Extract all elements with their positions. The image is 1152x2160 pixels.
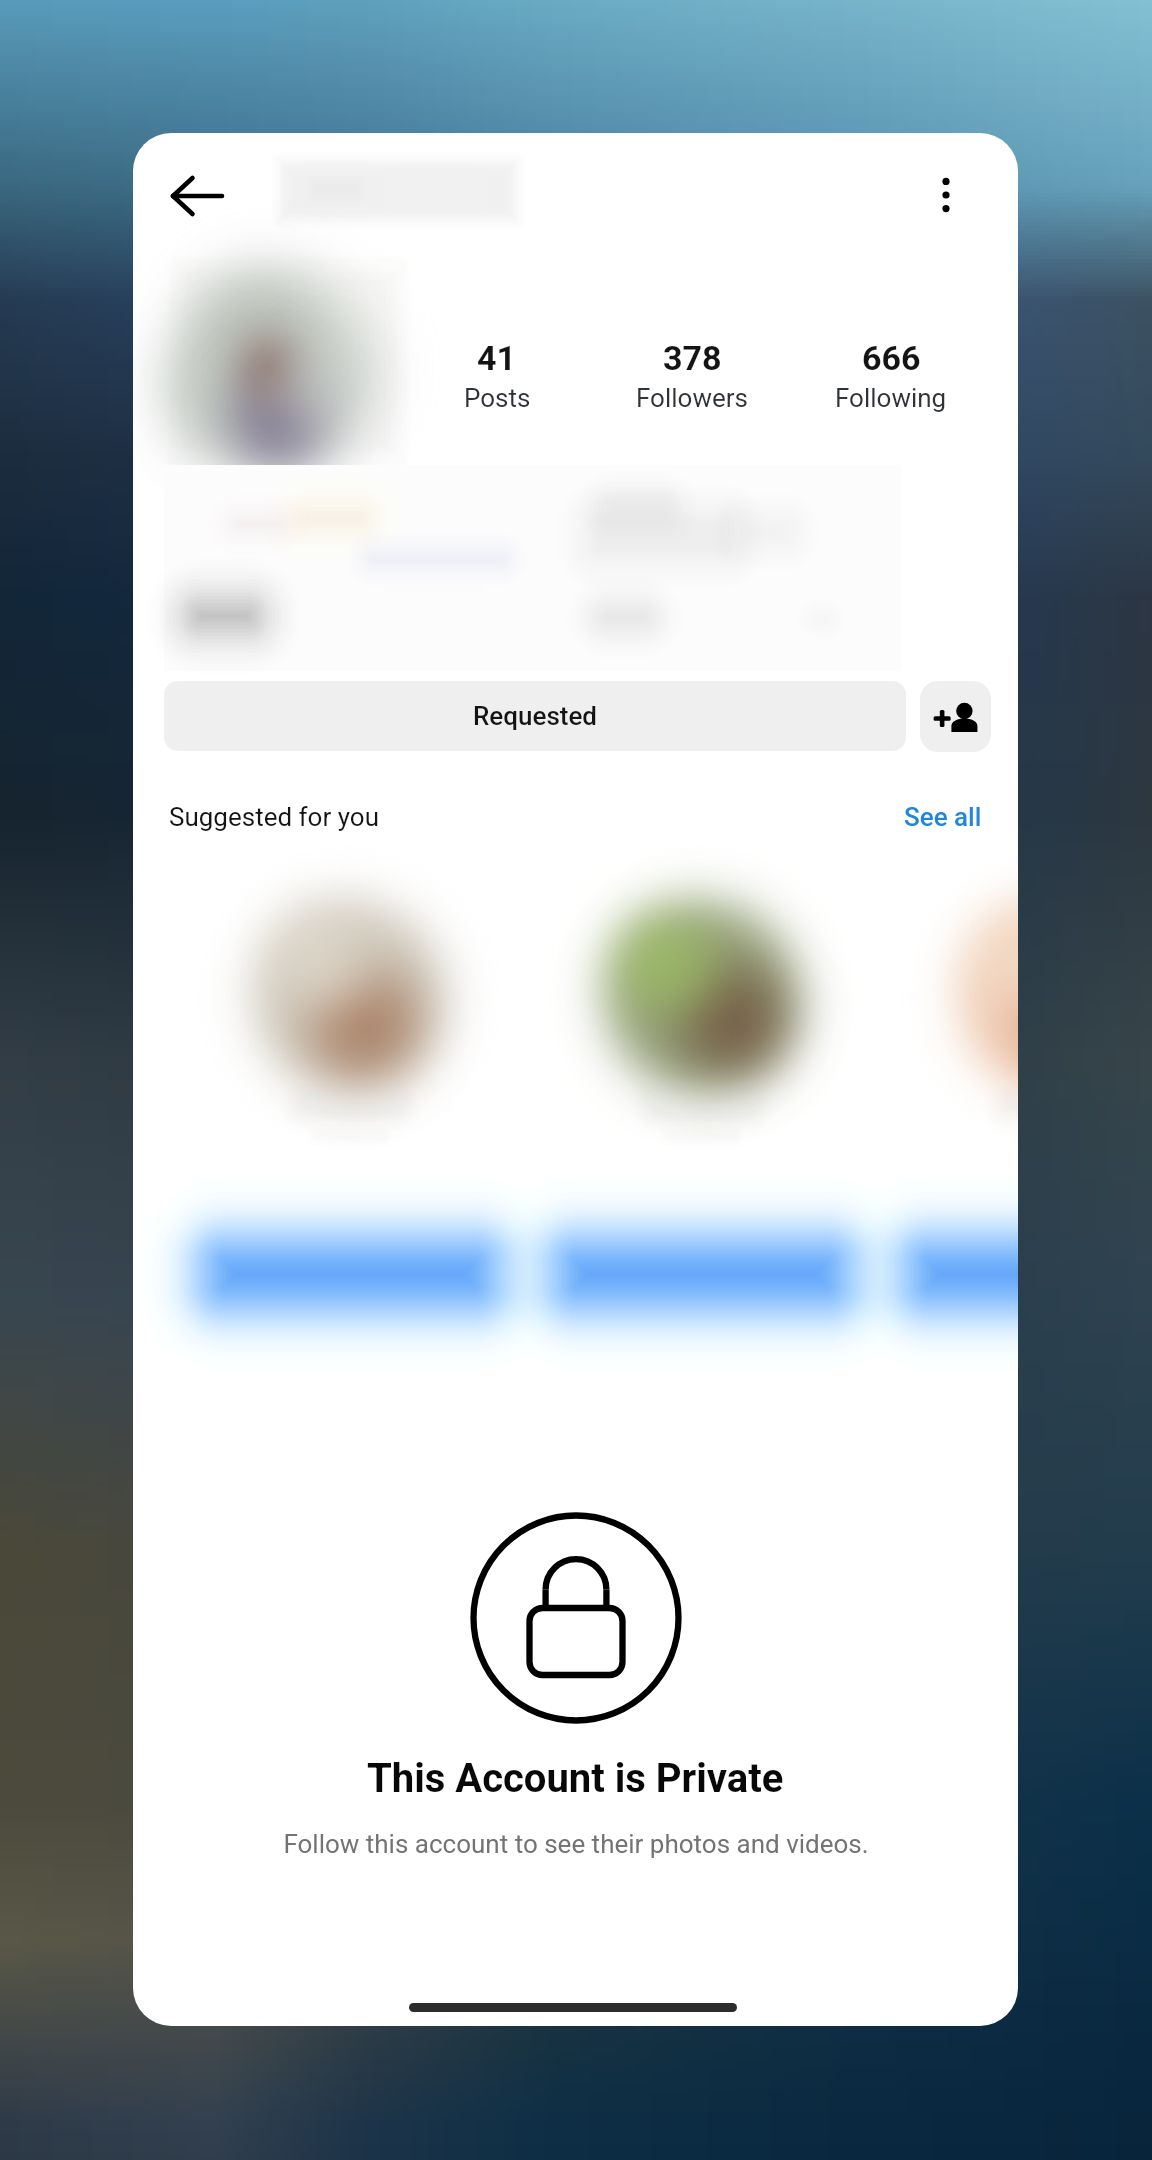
staticText: This Account is Private bbox=[367, 1755, 784, 1802]
button[interactable] bbox=[878, 860, 1018, 1340]
button[interactable]: Suggested for you bbox=[169, 802, 379, 832]
button[interactable] bbox=[526, 860, 878, 1340]
staticText: Posts bbox=[464, 383, 531, 413]
button[interactable]: Back bbox=[153, 152, 241, 240]
staticText: 41 bbox=[477, 338, 517, 378]
staticText: 378 bbox=[663, 338, 722, 378]
button[interactable] bbox=[174, 860, 526, 1340]
button[interactable]: More options bbox=[902, 151, 990, 239]
staticText: Requested bbox=[473, 701, 598, 731]
staticText: Following bbox=[835, 383, 947, 413]
button[interactable]: Requested bbox=[164, 681, 906, 751]
staticText: Follow this account to see their photos … bbox=[283, 1829, 869, 1859]
button[interactable]: Add person bbox=[920, 681, 991, 752]
button[interactable]: 666 bbox=[786, 338, 996, 413]
staticText: Suggested for you bbox=[169, 802, 379, 832]
staticText: Followers bbox=[636, 383, 748, 413]
button[interactable]: See all bbox=[903, 802, 982, 832]
button[interactable]: 41 bbox=[392, 338, 602, 413]
staticText: See all bbox=[904, 802, 982, 832]
button[interactable]: 378 bbox=[587, 338, 797, 413]
staticText: 666 bbox=[862, 338, 921, 378]
